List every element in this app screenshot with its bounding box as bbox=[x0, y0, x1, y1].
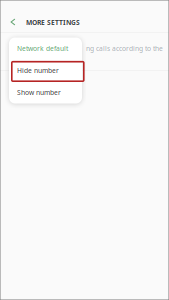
button[interactable]: Hide number bbox=[9, 59, 82, 81]
button[interactable]: Show number bbox=[9, 81, 82, 103]
staticText: ng calls according to the bbox=[86, 44, 163, 53]
staticText: Show number bbox=[17, 88, 61, 97]
button[interactable]: Back bbox=[5, 13, 21, 31]
staticText: MORE SETTINGS bbox=[26, 18, 80, 27]
staticText: Hide number bbox=[17, 66, 59, 75]
button[interactable]: Network default bbox=[9, 37, 82, 59]
staticText: Network default bbox=[17, 44, 68, 53]
